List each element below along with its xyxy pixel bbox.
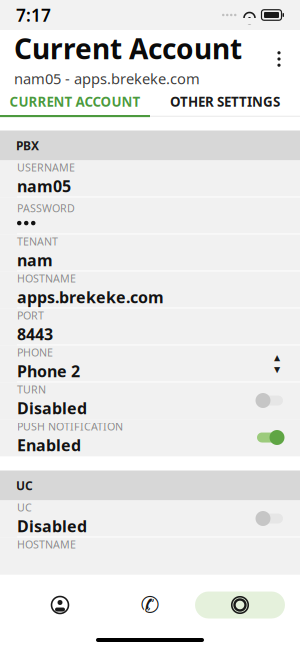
button[interactable]: USERNAME [0,160,300,197]
button[interactable]: Settings [195,591,285,618]
button[interactable]: TURN [0,382,300,419]
staticText: OTHER SETTINGS [170,93,280,110]
staticText: nam [17,249,53,271]
staticText: PBX [16,137,39,153]
staticText: PORT [17,308,44,322]
staticText: CURRENT ACCOUNT [9,93,140,110]
staticText: apps.brekeke.com [17,286,164,308]
staticText: USERNAME [17,160,75,174]
staticText: PASSWORD [17,201,75,215]
button[interactable]: OTHER SETTINGS [150,88,300,115]
staticText: TURN [17,382,46,396]
button[interactable]: More options [262,37,296,81]
staticText: Phone 2 [17,360,80,382]
button[interactable]: HOSTNAME [0,537,300,574]
staticText: HOSTNAME [17,537,76,551]
staticText: nam05 - apps.brekeke.com [14,69,200,88]
button[interactable]: Phone [105,591,195,619]
staticText: Current Account [14,30,242,67]
staticText: PHONE [17,345,53,359]
button[interactable]: PORT [0,308,300,345]
staticText: 8443 [17,323,53,345]
button[interactable]: PUSH NOTIFICATION [0,419,300,456]
staticText: ▲ [274,353,280,362]
staticText: Enabled [17,434,81,456]
staticText: nam05 [17,175,71,197]
staticText: UC [17,500,32,514]
staticText: Disabled [17,515,87,537]
button[interactable]: Contacts [15,591,105,619]
button[interactable]: PHONE [0,345,300,382]
staticText: UC [16,477,33,493]
button[interactable]: UC [0,500,300,537]
button[interactable]: PASSWORD [0,197,300,234]
staticText: PUSH NOTIFICATION [17,419,123,433]
staticText: 7:17 [16,3,51,26]
staticText: ▼ [274,365,280,374]
staticText: TENANT [17,234,58,248]
staticText: HOSTNAME [17,271,76,285]
button[interactable]: CURRENT ACCOUNT [0,88,150,115]
button[interactable]: TENANT [0,234,300,271]
button[interactable]: HOSTNAME [0,271,300,308]
staticText: ✆ [140,592,159,618]
staticText: Disabled [17,397,87,419]
